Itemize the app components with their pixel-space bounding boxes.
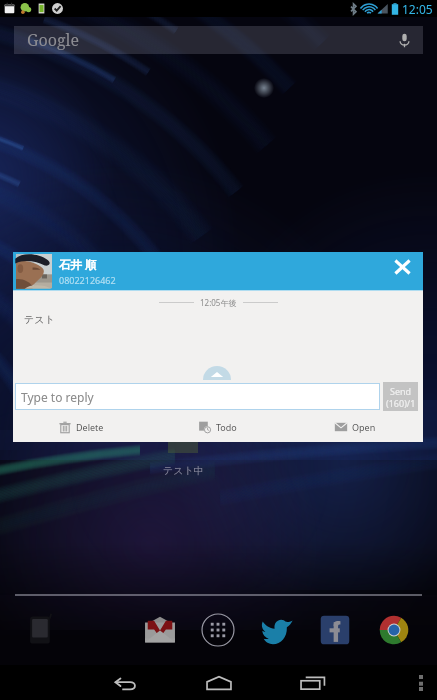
button[interactable]: Apps <box>201 613 235 647</box>
button[interactable]: Send <box>383 382 418 411</box>
button[interactable]: Back <box>103 665 147 700</box>
staticText: 08022126462 <box>59 274 116 286</box>
staticText: 12:05 <box>402 1 433 17</box>
staticText: Send <box>390 385 412 397</box>
staticText: Type to reply <box>21 389 94 405</box>
staticText: (160)/1 <box>386 397 416 409</box>
button[interactable]: Widget <box>168 437 198 453</box>
staticText: テスト <box>24 313 55 326</box>
button[interactable]: Twitter <box>260 613 294 647</box>
button[interactable]: Home <box>197 665 241 700</box>
button[interactable]: Open <box>286 412 423 442</box>
button[interactable]: Facebook <box>318 613 352 647</box>
button[interactable]: Recents <box>291 665 335 700</box>
button[interactable]: Close <box>387 252 417 282</box>
button[interactable]: Delete <box>13 412 149 442</box>
staticText: テスト中 <box>163 464 204 477</box>
staticText: Delete <box>76 421 104 433</box>
staticText: Todo <box>216 421 237 433</box>
button[interactable]: Gmail <box>143 613 177 647</box>
staticText: Google <box>27 29 80 51</box>
staticText: 石井 順 <box>59 257 97 273</box>
staticText: 12:05午後 <box>200 297 237 308</box>
staticText: Open <box>352 421 376 433</box>
button[interactable]: Google <box>14 26 423 54</box>
button[interactable]: Type to reply <box>16 384 379 409</box>
button[interactable]: Todo <box>149 412 286 442</box>
button[interactable]: Chrome <box>377 613 411 647</box>
button[interactable]: Phone <box>26 613 60 647</box>
button[interactable]: More options <box>405 665 437 700</box>
